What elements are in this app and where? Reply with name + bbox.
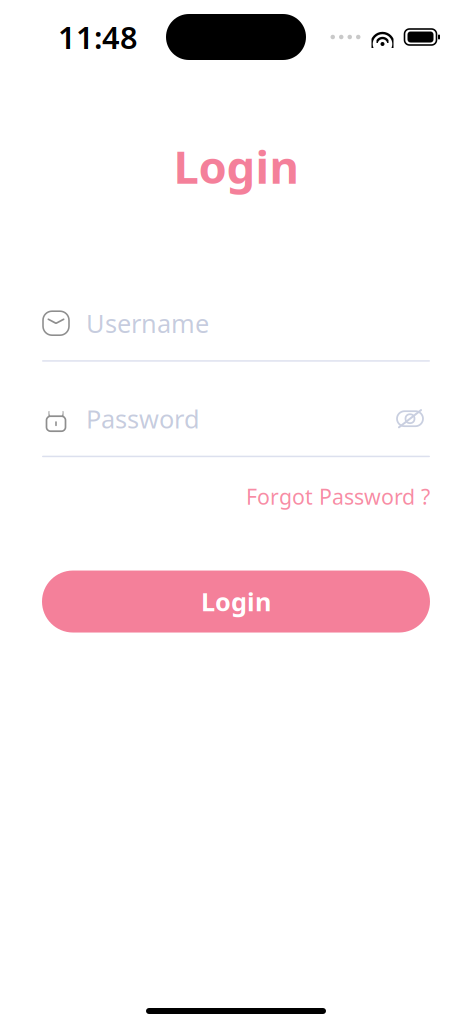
- staticText: 11:48: [58, 17, 138, 57]
- staticText: Password: [86, 402, 200, 435]
- staticText: Forgot Password ?: [246, 482, 430, 510]
- button[interactable]: Login: [42, 570, 430, 632]
- button[interactable]: Forgot Password ?: [246, 476, 430, 516]
- staticText: Username: [86, 306, 209, 340]
- staticText: Login: [201, 585, 271, 618]
- staticText: Login: [173, 136, 298, 196]
- button[interactable]: Show password: [390, 402, 430, 436]
